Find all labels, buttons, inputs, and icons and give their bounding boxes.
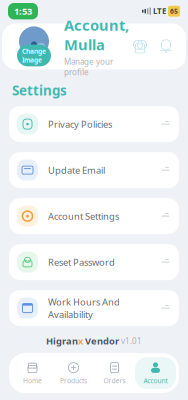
- staticText: Vendor: [83, 335, 121, 347]
- button[interactable]: Notifications: [158, 38, 174, 54]
- staticText: Account, Mulla: [64, 15, 129, 54]
- button[interactable]: Privacy Policies: [9, 106, 179, 142]
- button[interactable]: Work Hours And Availability: [9, 290, 179, 326]
- button[interactable]: Favorites: [132, 38, 148, 54]
- button[interactable]: Account: [135, 357, 176, 389]
- staticText: Update Email: [48, 164, 105, 176]
- staticText: 65: [170, 7, 178, 16]
- staticText: LTE: [153, 6, 166, 16]
- staticText: Products: [60, 376, 87, 385]
- button[interactable]: Products: [53, 357, 94, 389]
- staticText: Home: [23, 376, 42, 385]
- button[interactable]: Change Image: [17, 45, 51, 66]
- staticText: Change Image: [22, 47, 46, 64]
- staticText: Settings: [12, 81, 67, 99]
- staticText: v1.01: [121, 336, 142, 346]
- staticText: Account Settings: [48, 210, 119, 222]
- staticText: Orders: [103, 376, 125, 385]
- staticText: x: [78, 335, 83, 347]
- staticText: Account: [143, 376, 167, 385]
- button[interactable]: Home: [12, 357, 53, 389]
- staticText: Higran: [46, 335, 78, 347]
- button[interactable]: Update Email: [9, 152, 179, 188]
- button[interactable]: Reset Password: [9, 244, 179, 280]
- staticText: Privacy Policies: [48, 118, 112, 130]
- staticText: Reset Password: [48, 256, 115, 268]
- button[interactable]: Account Settings: [9, 198, 179, 234]
- button[interactable]: Orders: [94, 357, 135, 389]
- staticText: Manage your profile: [64, 56, 113, 77]
- staticText: Work Hours And Availability: [48, 296, 120, 320]
- staticText: 1:53: [14, 5, 32, 17]
